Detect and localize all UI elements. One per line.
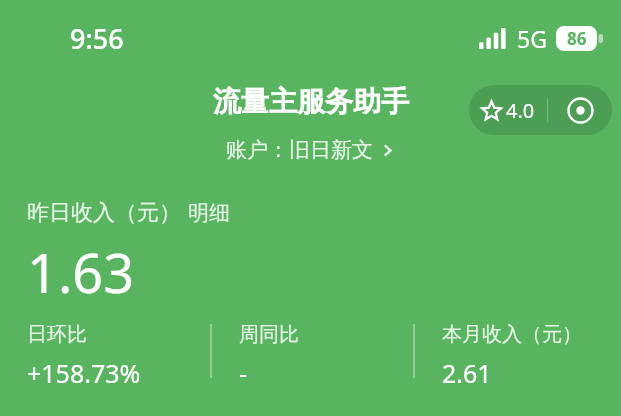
- button[interactable]: 账户：旧日新文: [218, 134, 403, 166]
- button[interactable]: More options: [548, 85, 612, 135]
- staticText: 周同比: [239, 322, 299, 347]
- button[interactable]: 日环比: [0, 320, 210, 392]
- staticText: 86: [567, 27, 587, 50]
- staticText: +158.73%: [27, 356, 141, 390]
- staticText: 日环比: [27, 322, 87, 347]
- staticText: 9:56: [70, 20, 124, 57]
- staticText: 4.0: [506, 97, 535, 124]
- staticText: 5G: [517, 23, 547, 54]
- staticText: 流量主服务助手: [213, 84, 409, 119]
- staticText: 昨日收入（元）: [27, 199, 181, 227]
- button[interactable]: 本月收入（元）: [415, 320, 582, 392]
- staticText: -: [239, 356, 248, 390]
- staticText: 2.61: [442, 356, 492, 390]
- button[interactable]: 明细: [183, 197, 235, 229]
- staticText: 明细: [188, 200, 230, 226]
- staticText: 本月收入（元）: [442, 322, 582, 347]
- button[interactable]: 周同比: [212, 320, 413, 392]
- staticText: 账户：旧日新文: [226, 137, 373, 163]
- staticText: 1.63: [27, 235, 135, 309]
- button[interactable]: Rating 4.0: [469, 85, 547, 135]
